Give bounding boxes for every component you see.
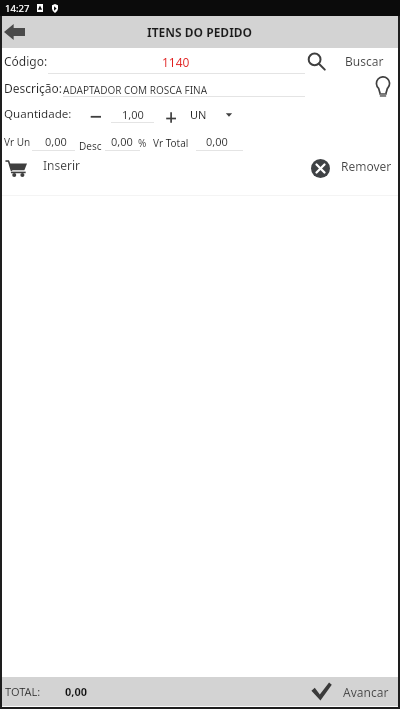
button[interactable]: Avancar [311,682,400,701]
staticText: Desc [79,139,102,153]
staticText: Vr Un [4,135,31,149]
staticText: ITENS DO PEDIDO [147,24,253,40]
staticText: Descrição: [4,80,63,96]
staticText: 1140 [162,54,190,70]
button[interactable]: Aumentar [164,112,178,125]
button[interactable]: Unidade [223,108,236,121]
staticText: 14:27 [5,2,30,15]
staticText: Avancar [343,684,389,700]
button[interactable]: Voltar [0,16,34,48]
staticText: Inserir [43,157,81,173]
staticText: Buscar [345,53,384,69]
staticText: Vr Total [153,136,189,150]
staticText: 0,00 [45,134,67,149]
staticText: TOTAL: [5,684,41,699]
staticText: Remover [341,158,392,174]
staticText: UN [190,107,207,122]
staticText: 0,00 [65,684,88,699]
button[interactable]: Dica [373,74,393,98]
staticText: ADAPTADOR COM ROSCA FINA [63,83,208,97]
staticText: 0,00 [111,134,133,149]
staticText: 0,00 [206,134,228,149]
button[interactable]: Inserir [5,156,93,173]
button[interactable]: Diminuir [88,108,104,124]
button[interactable]: Buscar [306,51,400,71]
staticText: 1,00 [122,107,144,122]
staticText: % [138,136,147,150]
staticText: Código: [4,53,48,69]
button[interactable]: Remover [311,156,392,175]
staticText: Quantidade: [4,106,72,122]
